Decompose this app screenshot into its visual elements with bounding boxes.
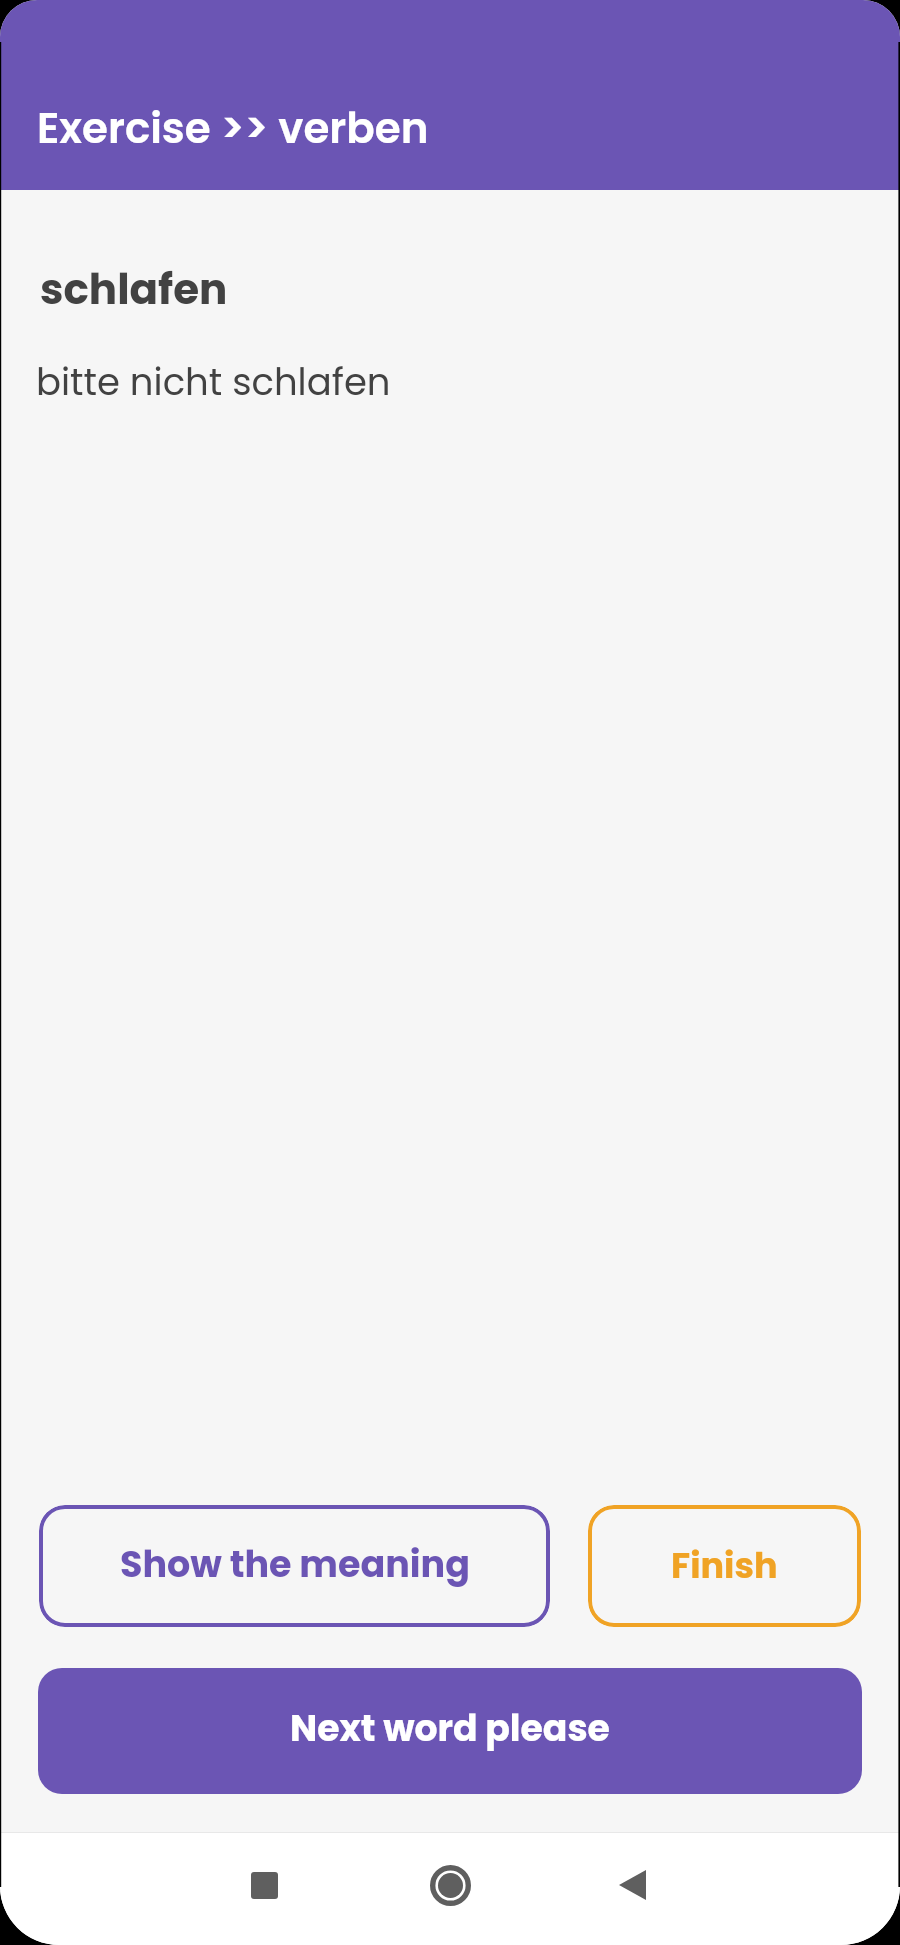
staticText: Exercise >> verben (37, 99, 429, 158)
button[interactable]: Show the meaning (39, 1505, 550, 1627)
staticText: Next word please (290, 1703, 610, 1754)
staticText: schlafen (40, 260, 228, 319)
button[interactable]: Recent apps (219, 1840, 309, 1930)
staticText: Finish (671, 1541, 778, 1590)
button[interactable]: Next word please (38, 1668, 862, 1794)
button[interactable]: Back (587, 1840, 677, 1930)
staticText: Show the meaning (120, 1539, 470, 1590)
staticText: bitte nicht schlafen (36, 356, 391, 408)
button[interactable]: Finish (588, 1505, 861, 1627)
button[interactable]: Home (405, 1840, 495, 1930)
